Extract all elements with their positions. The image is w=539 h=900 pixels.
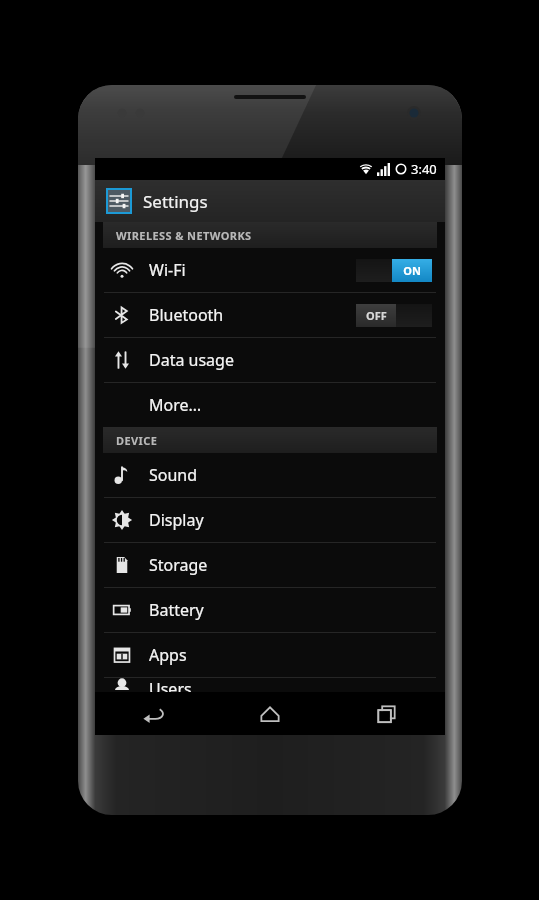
button[interactable]: Battery	[95, 588, 445, 632]
staticText: Settings	[143, 190, 208, 213]
staticText: Users	[149, 678, 192, 692]
staticText: Data usage	[149, 349, 234, 371]
button[interactable]: Switch on	[356, 259, 432, 282]
button[interactable]: Back	[95, 692, 211, 735]
button[interactable]: Sound	[95, 453, 445, 497]
staticText: Wi-Fi	[149, 259, 186, 281]
staticText: OFF	[366, 308, 387, 323]
staticText: WIRELESS & NETWORKS	[116, 228, 252, 243]
staticText: Display	[149, 509, 204, 531]
button[interactable]: Users	[95, 678, 445, 692]
staticText: Apps	[149, 644, 187, 666]
button[interactable]: Wi-Fi	[95, 248, 445, 292]
staticText: More…	[149, 394, 202, 416]
staticText: Sound	[149, 464, 198, 486]
button[interactable]: Recents	[328, 692, 445, 735]
staticText: Battery	[149, 599, 204, 621]
staticText: ON	[403, 263, 421, 278]
staticText: DEVICE	[116, 433, 158, 448]
staticText: Storage	[149, 554, 208, 576]
staticText: 3:40	[411, 160, 437, 178]
staticText: Bluetooth	[149, 304, 224, 326]
button[interactable]: Apps	[95, 633, 445, 677]
button[interactable]: Home	[211, 692, 328, 735]
button[interactable]: Storage	[95, 543, 445, 587]
button[interactable]: Switch off	[356, 304, 432, 327]
button[interactable]: More…	[95, 383, 445, 427]
button[interactable]: Bluetooth	[95, 293, 445, 337]
button[interactable]: Data usage	[95, 338, 445, 382]
button[interactable]: Display	[95, 498, 445, 542]
